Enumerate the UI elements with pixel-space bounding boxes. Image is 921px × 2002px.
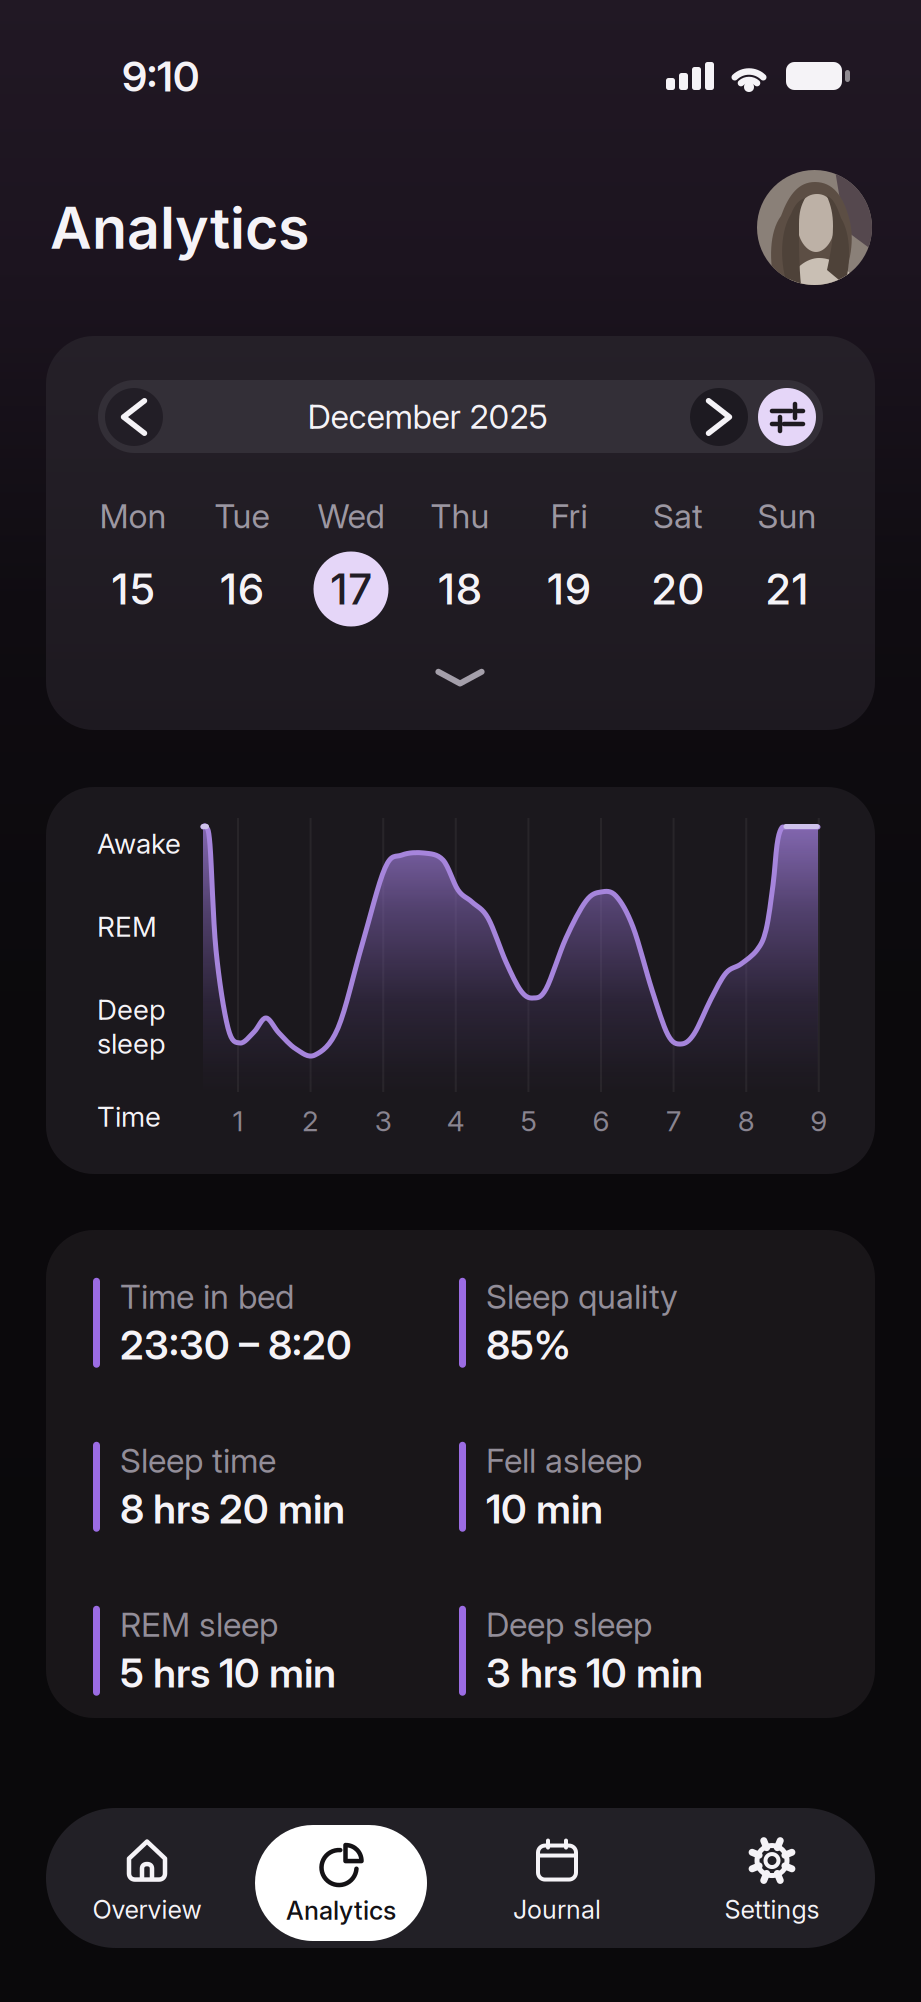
staticText: 19: [546, 564, 591, 614]
staticText: Deep: [97, 993, 166, 1026]
staticText: Settings: [724, 1895, 819, 1924]
staticText: 2: [302, 1104, 319, 1137]
staticText: 8 hrs 20 min: [120, 1485, 345, 1532]
staticText: 23:30 – 8:20: [120, 1321, 352, 1368]
staticText: Awake: [97, 827, 181, 860]
staticText: 5: [520, 1104, 536, 1137]
staticText: Thu: [430, 496, 489, 536]
button[interactable]: Overview: [57, 1826, 237, 1936]
button[interactable]: 19: [514, 549, 624, 629]
staticText: Journal: [513, 1895, 601, 1924]
button[interactable]: [758, 388, 816, 446]
staticText: 5 hrs 10 min: [120, 1649, 336, 1696]
staticText: Sun: [757, 496, 816, 536]
staticText: 9:10: [122, 52, 199, 101]
button[interactable]: 17: [296, 549, 406, 629]
staticText: 17: [330, 564, 372, 614]
button[interactable]: 20: [623, 549, 733, 629]
staticText: 85%: [486, 1321, 571, 1368]
staticText: sleep: [97, 1027, 166, 1060]
staticText: 1: [232, 1104, 243, 1137]
staticText: Tue: [214, 496, 269, 536]
staticText: 15: [111, 564, 155, 614]
button[interactable]: 15: [78, 549, 188, 629]
staticText: Sleep quality: [486, 1277, 678, 1316]
staticText: 20: [651, 564, 705, 614]
staticText: Fell asleep: [486, 1441, 642, 1480]
staticText: 6: [592, 1104, 609, 1137]
button[interactable]: [757, 170, 872, 285]
staticText: 4: [447, 1104, 465, 1137]
button[interactable]: 21: [732, 549, 842, 629]
staticText: Wed: [317, 496, 384, 536]
staticText: 18: [437, 564, 482, 614]
staticText: 3: [375, 1104, 392, 1137]
staticText: 16: [219, 564, 264, 614]
staticText: Deep sleep: [486, 1605, 652, 1644]
staticText: Time in bed: [120, 1277, 294, 1316]
button[interactable]: 16: [187, 549, 297, 629]
staticText: REM: [97, 910, 157, 943]
staticText: Analytics: [286, 1896, 396, 1925]
staticText: Mon: [99, 496, 166, 536]
button[interactable]: Settings: [682, 1826, 862, 1936]
staticText: 3 hrs 10 min: [486, 1649, 703, 1696]
button[interactable]: [690, 388, 748, 446]
button[interactable]: Journal: [467, 1826, 647, 1936]
staticText: 9: [810, 1104, 827, 1137]
button[interactable]: 18: [405, 549, 515, 629]
button[interactable]: [433, 664, 487, 690]
button[interactable]: Analytics: [255, 1825, 427, 1941]
staticText: Time: [97, 1100, 161, 1133]
staticText: REM sleep: [120, 1605, 278, 1644]
staticText: 21: [765, 564, 809, 614]
staticText: Analytics: [50, 194, 309, 262]
staticText: Overview: [92, 1895, 201, 1924]
staticText: Sat: [653, 496, 703, 536]
staticText: Sleep time: [120, 1441, 276, 1480]
staticText: Fri: [550, 496, 587, 536]
staticText: 8: [738, 1104, 755, 1137]
button[interactable]: [105, 388, 163, 446]
staticText: 7: [666, 1104, 681, 1137]
staticText: 10 min: [486, 1485, 603, 1532]
staticText: December 2025: [307, 397, 547, 436]
